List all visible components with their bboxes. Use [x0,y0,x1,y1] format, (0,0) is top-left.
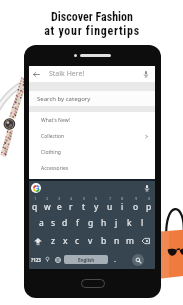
button[interactable]: . [109,250,121,269]
staticText: y [94,201,99,213]
other: Back [33,71,40,78]
button[interactable]: 2 [41,195,53,214]
button[interactable]: 1 [29,195,41,214]
staticText: n [114,235,120,247]
button[interactable]: m [123,232,136,250]
button[interactable]: d [59,214,71,232]
button[interactable]: Backspace [136,232,155,250]
button[interactable]: f [71,214,84,232]
staticText: c [75,235,80,247]
staticText: e [57,201,62,213]
staticText: 0 [148,196,151,201]
staticText: 9 [135,196,138,201]
button[interactable]: Accessories [29,160,155,176]
staticText: a [39,217,44,229]
button[interactable]: Clothing [29,144,155,160]
staticText: Stalk Here! [49,69,85,79]
button[interactable]: Switch language [52,250,63,269]
staticText: q [32,201,38,213]
staticText: i [121,201,124,213]
staticText: 2 [46,196,49,201]
button[interactable]: s [47,214,59,232]
staticText: v [88,235,93,247]
staticText: o [133,201,139,213]
staticText: b [101,235,107,247]
button[interactable]: x [59,232,71,250]
button[interactable]: 3 [53,195,65,214]
staticText: 8 [121,196,124,201]
staticText: English [78,257,95,263]
staticText: 3 [58,196,61,201]
staticText: d [62,217,68,229]
button[interactable]: 4 [65,195,77,214]
staticText: 5 [83,196,86,201]
button[interactable]: l [136,214,149,232]
button[interactable]: n [110,232,123,250]
staticText: ?123 [31,257,41,263]
staticText: l [141,217,144,229]
other: Voice search [142,70,150,78]
staticText: k [127,217,132,229]
staticText: w [44,201,51,213]
button[interactable]: a [35,214,47,232]
staticText: What's New! [41,117,70,124]
staticText: 4 [70,196,73,201]
button[interactable]: Emoji [43,250,52,269]
button[interactable]: z [47,232,59,250]
button[interactable]: English [64,255,108,264]
staticText: r [69,201,73,213]
button[interactable]: 9 [129,195,142,214]
button[interactable]: Google [31,183,41,193]
staticText: m [126,235,134,247]
staticText: Discover Fashion [51,10,133,24]
other: Voice search [143,184,151,192]
staticText: t [82,201,86,213]
staticText: Search by category [37,95,91,103]
button[interactable]: h [97,214,110,232]
staticText: 7 [109,196,112,201]
staticText: Accessories [41,165,69,172]
button[interactable]: 0 [142,195,155,214]
staticText: . [114,255,116,265]
staticText: 6 [95,196,98,201]
staticText: u [107,201,113,213]
button[interactable]: Search [121,250,155,269]
button[interactable]: Collection [29,128,155,144]
staticText: j [115,217,118,229]
button[interactable]: b [97,232,110,250]
staticText: p [146,201,152,213]
staticText: 1 [34,196,37,201]
button[interactable]: j [110,214,123,232]
staticText: Clothing [41,149,61,156]
staticText: h [101,217,107,229]
button[interactable]: c [71,232,84,250]
button[interactable]: 7 [103,195,116,214]
button[interactable]: 5 [77,195,90,214]
button[interactable]: k [123,214,136,232]
button[interactable]: 6 [90,195,103,214]
button[interactable]: Shift [29,232,47,250]
staticText: f [76,217,79,229]
staticText: s [51,217,56,229]
staticText: Collection [41,133,65,140]
staticText: x [63,235,68,247]
staticText: z [51,235,55,247]
staticText: at your fingertips [44,24,140,38]
staticText: g [88,217,94,229]
button[interactable]: What's New! [29,112,155,128]
button[interactable]: 8 [116,195,129,214]
button[interactable]: ?123 [29,250,43,269]
button[interactable]: Back [29,66,155,82]
button[interactable]: g [84,214,97,232]
button[interactable]: v [84,232,97,250]
